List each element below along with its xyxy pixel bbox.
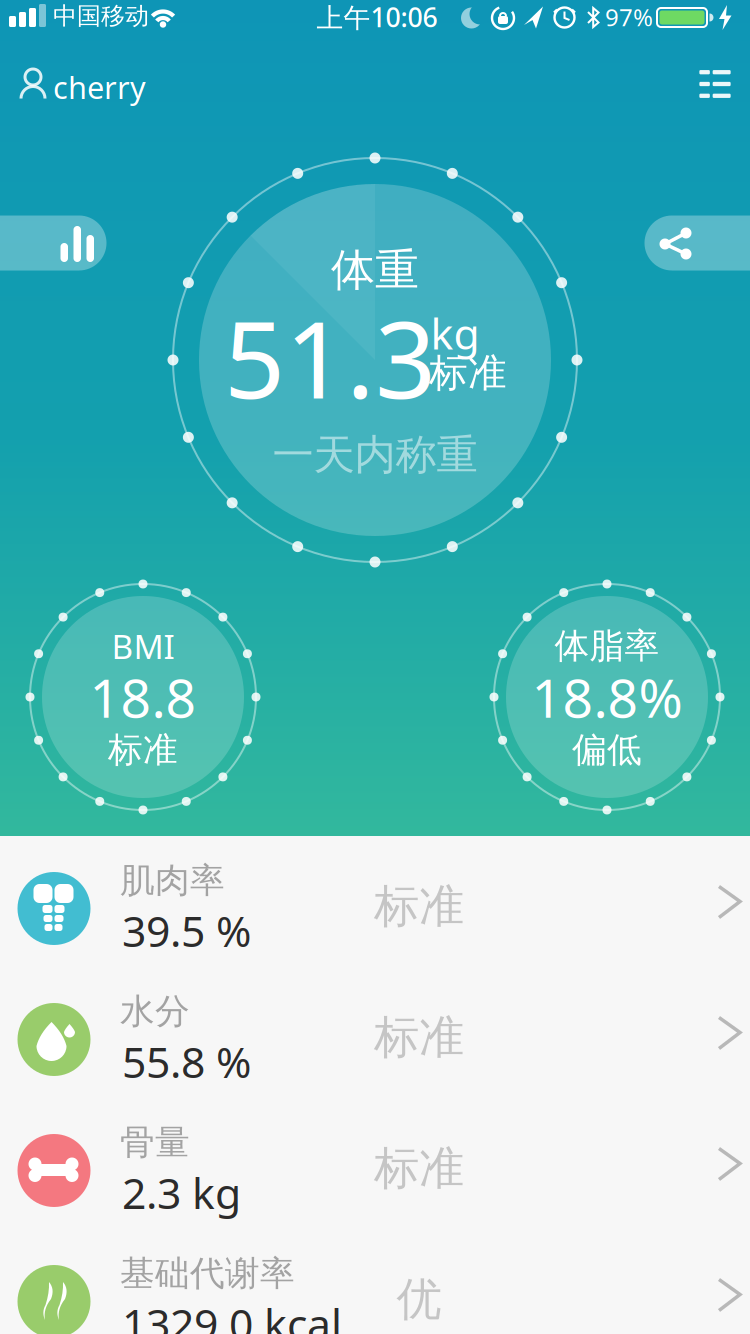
button[interactable]: Share (644, 215, 750, 270)
staticText: 体重 (331, 243, 419, 297)
staticText: 水分 (120, 990, 190, 1033)
staticText: 标准 (374, 879, 464, 934)
staticText: 中国移动 (53, 1, 149, 31)
staticText: 肌肉率 (120, 859, 225, 902)
button[interactable]: 骨量 (0, 1102, 750, 1233)
staticText: kg (430, 305, 479, 361)
staticText: 18.8% (531, 662, 682, 732)
staticText: 优 (396, 1272, 441, 1327)
button[interactable]: 肌肉率 (0, 840, 750, 971)
staticText: 骨量 (120, 1121, 190, 1164)
staticText: 1329.0 kcal (122, 1295, 342, 1334)
button[interactable]: Profile (0, 52, 200, 116)
staticText: 体脂率 (554, 625, 659, 667)
staticText: 18.8 (89, 662, 196, 732)
staticText: 标准 (108, 729, 178, 771)
staticText: 一天内称重 (272, 430, 477, 480)
staticText: 基础代谢率 (120, 1252, 295, 1295)
staticText: 上午10:06 (316, 0, 437, 35)
staticText: 39.5 % (122, 902, 251, 959)
staticText: 标准 (374, 1010, 464, 1065)
staticText: 标准 (429, 349, 507, 397)
staticText: 偏低 (572, 729, 642, 771)
staticText: 97% (605, 1, 653, 33)
staticText: cherry (53, 67, 146, 107)
staticText: 55.8 % (122, 1033, 251, 1090)
staticText: 标准 (374, 1141, 464, 1196)
button[interactable]: Menu (699, 70, 731, 98)
button[interactable]: 水分 (0, 971, 750, 1102)
staticText: 2.3 kg (122, 1164, 241, 1221)
staticText: 51.3 (224, 286, 436, 428)
button[interactable]: 基础代谢率 (0, 1233, 750, 1334)
button[interactable]: History chart (0, 215, 106, 270)
staticText: BMI (111, 624, 174, 668)
